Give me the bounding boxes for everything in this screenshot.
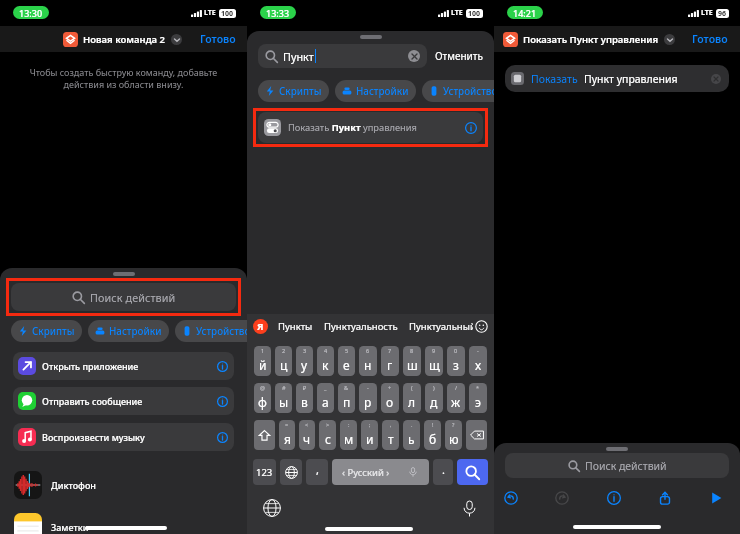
staticText: ! [432,421,434,428]
button[interactable]: Скрипты [11,320,82,342]
button[interactable]: 123 [253,459,276,485]
staticText: ч [303,431,311,447]
button[interactable]: 1 [254,346,271,376]
button[interactable]: . [433,459,453,485]
button[interactable]: Поиск действий [11,283,236,311]
button[interactable]: Заметки [14,513,234,534]
button[interactable]: = [279,420,295,450]
staticText: ы [279,394,289,410]
staticText: , [316,462,319,477]
button[interactable]: ) [425,383,443,413]
staticText: Показать Пункт управления [523,33,659,46]
button[interactable]: . [403,420,420,450]
button[interactable]: Пункт [258,44,427,68]
staticText: Поиск действий [90,290,176,305]
staticText: 13:33 [266,7,290,19]
button[interactable]: Показать Пункт управления [258,112,483,143]
button[interactable]: ( [403,383,421,413]
button[interactable]: Shift [254,420,275,450]
button[interactable]: - [469,346,487,376]
staticText: > [326,421,330,428]
staticText: & [344,384,349,391]
staticText: - [367,384,369,391]
button[interactable]: & [338,383,355,413]
button[interactable]: Устройство [175,320,247,342]
button[interactable]: Настройки [88,320,169,342]
button[interactable]: ₽ [296,383,313,413]
staticText: я [284,431,291,447]
button[interactable]: Новая команда 2 [63,32,182,47]
staticText: ; [369,421,371,428]
button[interactable]: 7 [381,346,399,376]
staticText: э [475,394,481,410]
button[interactable]: Диктофон [14,471,234,499]
button[interactable]: / [447,383,465,413]
button[interactable]: ‹ Русский › [332,459,429,485]
button[interactable]: Показать [505,65,729,92]
button[interactable]: + [381,383,399,413]
button[interactable]: Показать Пункт управления [503,32,675,47]
button[interactable]: Скрипты [258,80,329,102]
button[interactable]: Открыть приложение [13,352,234,380]
button[interactable]: 4 [317,346,334,376]
staticText: 6 [366,347,370,354]
staticText: ) [433,384,435,391]
button[interactable]: Настройки [335,80,416,102]
button[interactable]: 9 [425,346,443,376]
button[interactable]: Undo [503,490,519,506]
button[interactable]: Play [708,490,724,506]
staticText: Настройки [356,85,409,98]
staticText: е [343,357,350,373]
staticText: в [301,394,308,410]
button[interactable]: > [319,420,336,450]
button[interactable]: Language [263,499,281,517]
button[interactable]: 2 [275,346,292,376]
staticText: 96 [718,9,727,18]
button[interactable]: - [359,383,377,413]
staticText: + [388,384,392,391]
button[interactable]: Поиск действий [505,453,729,478]
button[interactable]: Отправить сообщение [13,387,234,415]
button[interactable]: Switch keyboard [280,459,302,485]
button[interactable]: : [340,420,357,450]
button[interactable]: , [306,459,328,485]
button[interactable]: # [275,383,292,413]
button[interactable]: Воспроизвести музыку [13,423,234,451]
staticText: й [259,357,267,373]
staticText: LTE [451,8,463,18]
button[interactable]: @ [254,383,271,413]
button[interactable]: 3 [296,346,313,376]
button[interactable]: ? [445,420,462,450]
button[interactable]: ! [424,420,441,450]
staticText: Показать [531,72,578,86]
button[interactable]: Search [457,459,488,485]
button[interactable]: Готово [200,32,236,46]
button[interactable]: 6 [359,346,377,376]
button[interactable]: Готово [692,32,728,46]
button[interactable]: Отменить [435,49,483,63]
staticText: г [387,357,393,373]
button[interactable]: Info [606,490,622,506]
button[interactable]: _ [317,383,334,413]
button[interactable]: Share [657,490,673,506]
staticText: Скрипты [279,85,322,98]
staticText: 9 [432,347,436,354]
staticText: р [364,394,372,410]
button[interactable]: 8 [403,346,421,376]
staticText: и [366,431,374,447]
staticText: 1 [261,347,265,354]
button[interactable]: * [469,383,487,413]
button[interactable]: Dictation [461,500,478,517]
button[interactable]: Redo [554,490,570,506]
staticText: 14:21 [513,7,537,19]
button[interactable]: 5 [338,346,355,376]
staticText: Я [257,320,264,333]
staticText: у [301,357,308,373]
button[interactable]: < [299,420,315,450]
button[interactable]: 0 [447,346,465,376]
staticText: Заметки [51,521,89,533]
button[interactable]: , [382,420,399,450]
button[interactable]: Backspace [466,420,487,450]
button[interactable]: ; [361,420,378,450]
button[interactable]: Устройство [422,80,494,102]
